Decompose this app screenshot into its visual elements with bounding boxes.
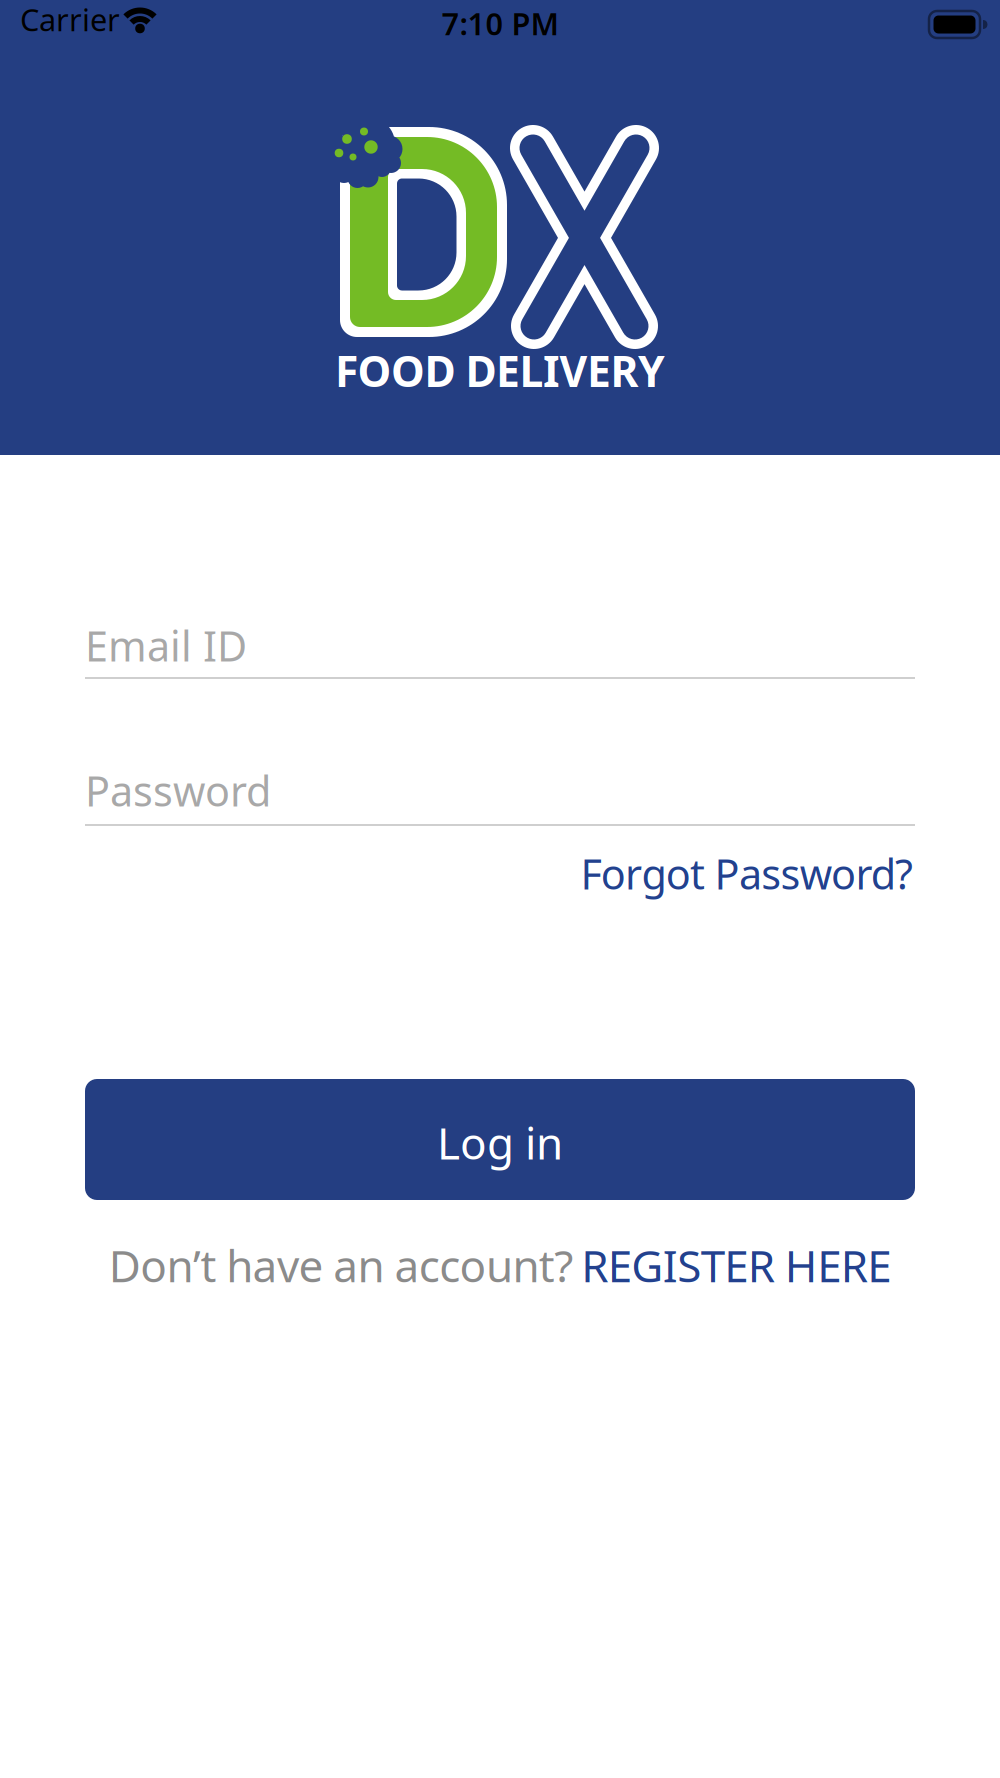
staticText: Email ID <box>85 618 247 673</box>
staticText: Carrier <box>20 0 120 40</box>
button[interactable]: Forgot Password? <box>580 846 913 901</box>
button[interactable]: Email ID <box>85 618 915 679</box>
button[interactable]: Log in <box>85 1079 915 1200</box>
button[interactable]: REGISTER HERE <box>581 1236 891 1294</box>
staticText: REGISTER HERE <box>581 1236 891 1294</box>
staticText: 7:10 PM <box>441 3 558 44</box>
staticText: Forgot Password? <box>580 846 913 901</box>
staticText: Log in <box>437 1113 563 1172</box>
button[interactable]: Password <box>85 763 915 826</box>
staticText: Don’t have an account? <box>109 1236 573 1294</box>
staticText: FOOD DELIVERY <box>335 342 665 399</box>
staticText: Password <box>85 763 271 818</box>
